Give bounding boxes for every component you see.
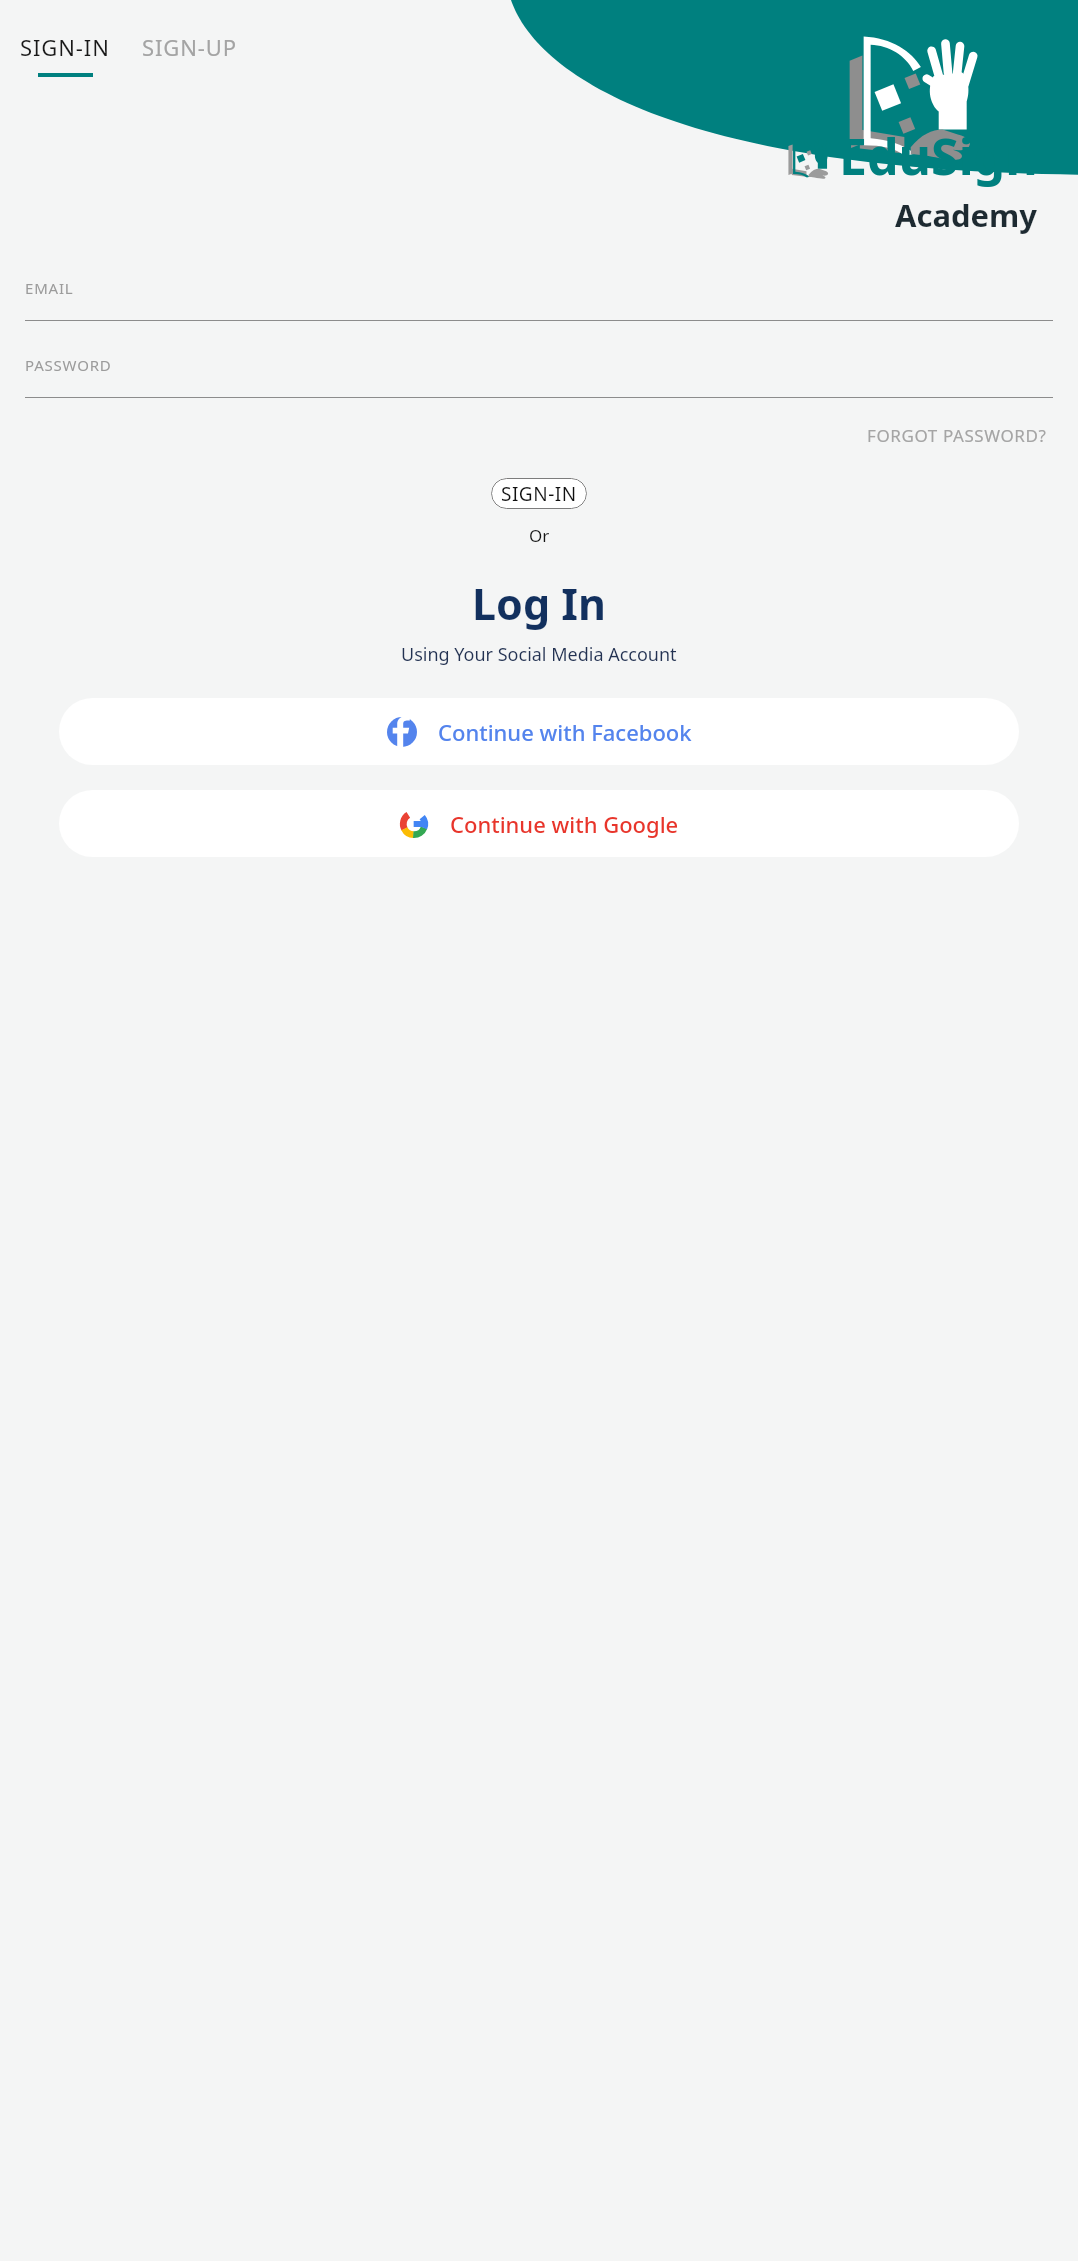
button[interactable]: SIGN-IN: [13, 32, 117, 77]
staticText: SIGN-IN: [20, 32, 110, 62]
button[interactable]: SIGN-IN: [491, 478, 587, 509]
button[interactable]: Google: [59, 790, 1019, 857]
other: Google: [399, 809, 429, 839]
staticText: Or: [529, 524, 550, 547]
button[interactable]: FORGOT PASSWORD?: [861, 418, 1053, 453]
staticText: Log In: [472, 574, 606, 633]
other: Facebook: [387, 717, 417, 747]
button[interactable]: Facebook: [59, 698, 1019, 765]
staticText: Academy: [895, 194, 1038, 236]
staticText: Using Your Social Media Account: [401, 642, 677, 667]
staticText: Continue with Google: [450, 809, 679, 839]
staticText: EduSign: [839, 122, 1038, 190]
staticText: SIGN-UP: [142, 32, 238, 62]
staticText: FORGOT PASSWORD?: [867, 424, 1047, 447]
staticText: SIGN-IN: [501, 481, 577, 507]
staticText: Continue with Facebook: [438, 717, 692, 747]
button[interactable]: SIGN-UP: [135, 32, 245, 62]
button[interactable]: PASSWORD: [25, 355, 1053, 398]
staticText: PASSWORD: [25, 355, 112, 375]
button[interactable]: EMAIL: [25, 278, 1053, 321]
staticText: EMAIL: [25, 278, 74, 298]
